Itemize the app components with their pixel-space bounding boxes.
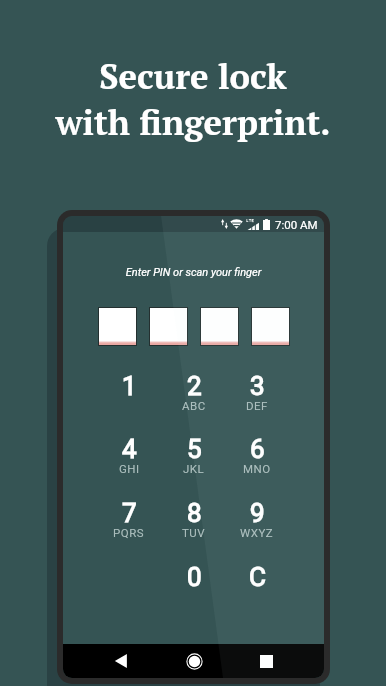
button[interactable]: 7	[98, 498, 160, 554]
staticText: DEF	[246, 399, 268, 412]
button[interactable]: 9	[226, 498, 288, 554]
staticText: 0	[187, 562, 202, 592]
button[interactable]: 6	[226, 434, 288, 490]
staticText: 3	[250, 371, 265, 401]
staticText: 6	[250, 434, 265, 464]
button[interactable]: Recent apps	[242, 644, 290, 678]
staticText: GHI	[119, 462, 140, 475]
button[interactable]	[200, 307, 239, 346]
staticText: 9	[250, 498, 265, 528]
button[interactable]: Back	[97, 644, 145, 678]
staticText: 5	[187, 434, 202, 464]
staticText: JKL	[183, 462, 205, 475]
staticText: Secure lock with fingerprint.	[55, 53, 331, 145]
button[interactable]: 3	[226, 371, 288, 427]
button[interactable]	[149, 307, 188, 346]
button[interactable]: Home	[170, 644, 218, 678]
staticText: WXYZ	[240, 526, 274, 539]
staticText: Enter PIN or scan your finger	[63, 266, 324, 279]
button[interactable]: 1	[98, 371, 160, 427]
staticText: 1	[122, 371, 137, 401]
staticText: MNO	[243, 462, 271, 475]
staticText: ABC	[182, 399, 206, 412]
button[interactable]: 0	[163, 562, 225, 618]
staticText: 8	[187, 498, 202, 528]
staticText: 2	[187, 371, 202, 401]
staticText: 7:00 AM	[275, 218, 318, 231]
staticText: TUV	[182, 526, 206, 539]
button[interactable]	[98, 307, 137, 346]
staticText: PQRS	[113, 526, 145, 539]
staticText: C	[249, 562, 266, 592]
button[interactable]: 8	[163, 498, 225, 554]
staticText: 4	[122, 434, 137, 464]
button[interactable]: 4	[98, 434, 160, 490]
button[interactable]	[251, 307, 290, 346]
button[interactable]: 2	[163, 371, 225, 427]
staticText: 7	[122, 498, 137, 528]
button[interactable]: C	[226, 562, 288, 618]
button[interactable]: 5	[163, 434, 225, 490]
